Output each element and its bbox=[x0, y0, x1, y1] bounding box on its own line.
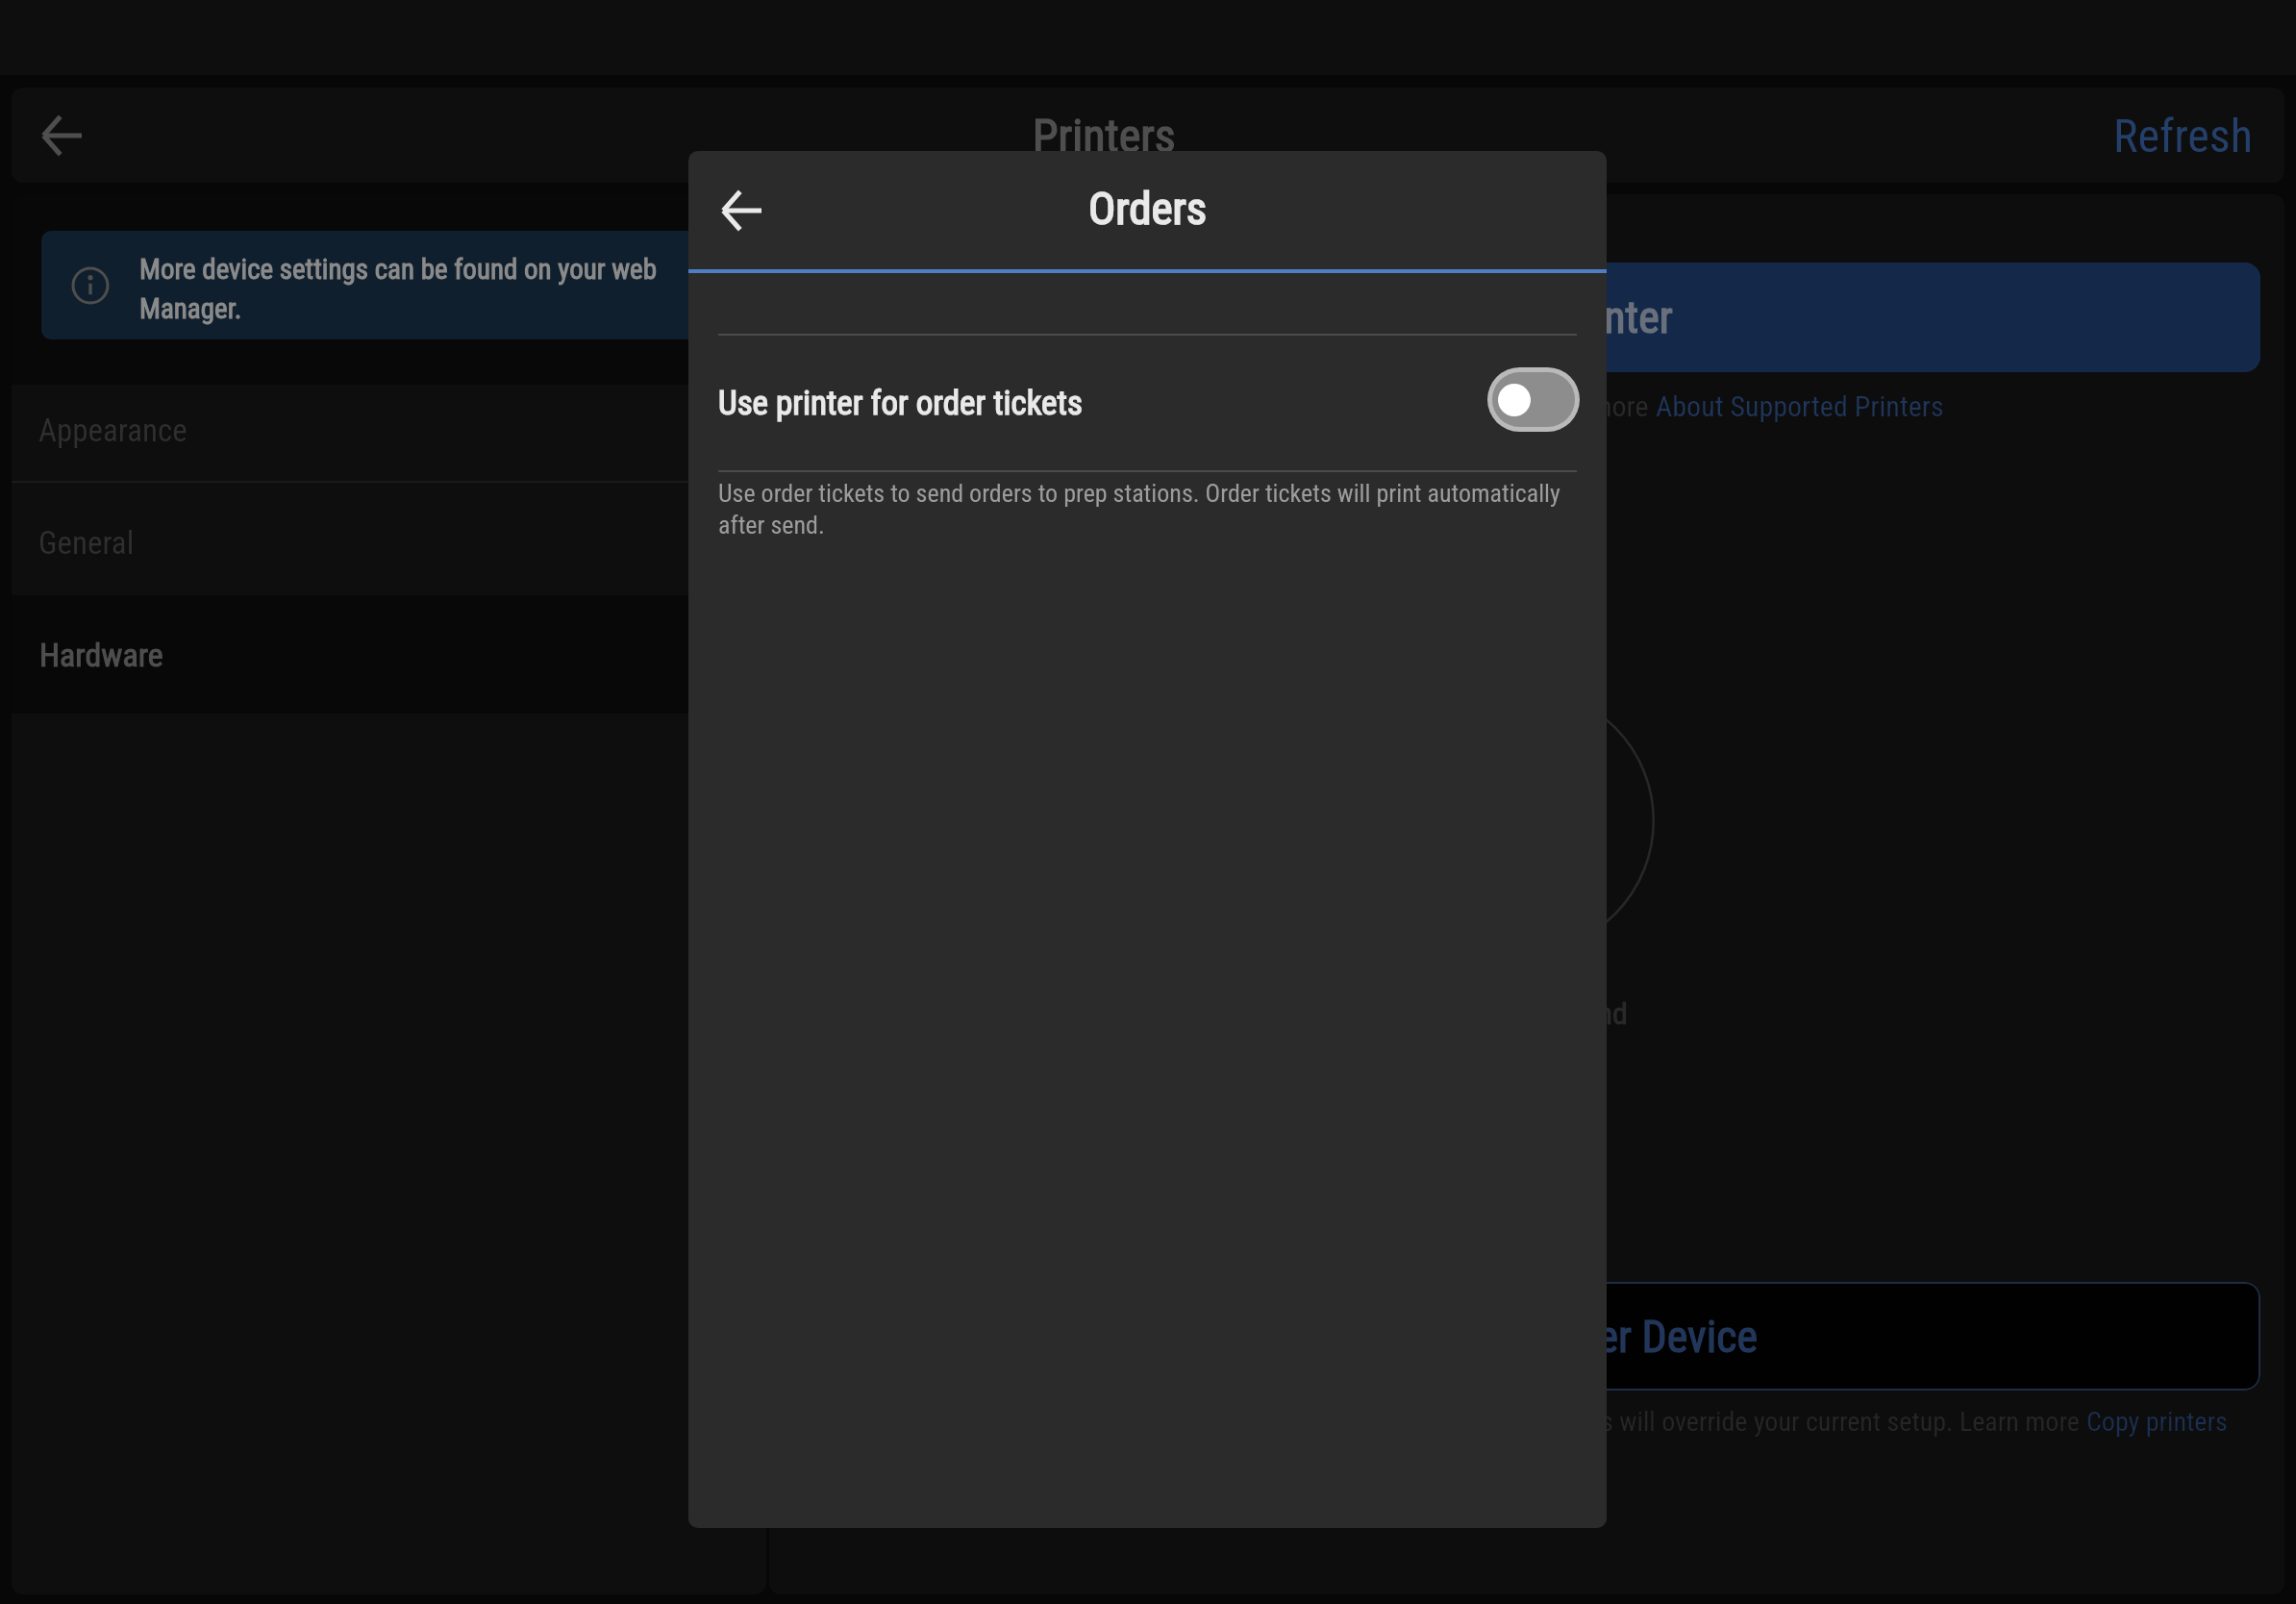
button[interactable]: Refresh bbox=[2082, 91, 2284, 180]
button[interactable]: Add New Printer bbox=[801, 263, 2260, 372]
button[interactable]: Appearance bbox=[12, 385, 766, 481]
button[interactable]: Copy from Another Device bbox=[801, 1282, 2260, 1391]
button[interactable]: Back bbox=[21, 95, 102, 176]
button[interactable]: Hardware bbox=[12, 595, 766, 714]
staticText: Add New Printer bbox=[1389, 291, 1673, 343]
staticText: Copy from Another Device bbox=[1304, 1311, 1759, 1363]
button[interactable]: Back bbox=[700, 169, 783, 252]
staticText: Hardware bbox=[39, 636, 163, 674]
staticText: General bbox=[38, 524, 135, 562]
staticText: More device settings can be found on you… bbox=[139, 253, 657, 286]
staticText: Copy printers from another device that i… bbox=[826, 1406, 2086, 1438]
button[interactable]: General bbox=[12, 483, 766, 595]
staticText: Manager. bbox=[139, 292, 242, 325]
staticText: Use order tickets to send orders to prep… bbox=[718, 479, 1577, 539]
button[interactable]: More device settings can be found on you… bbox=[41, 231, 724, 339]
button[interactable]: Copy printers bbox=[2086, 1406, 2228, 1438]
staticText: Appearance bbox=[38, 412, 187, 449]
staticText: No printers found bbox=[1415, 995, 1628, 1032]
button[interactable]: About Supported Printers bbox=[1656, 389, 1944, 423]
staticText: Refresh bbox=[2113, 109, 2253, 163]
staticText: Use printer for order tickets bbox=[718, 384, 1487, 423]
button[interactable]: Use printer for order tickets bbox=[688, 336, 1607, 470]
staticText: Only certain printers are supported. Lea… bbox=[1111, 389, 1656, 423]
staticText: Printers bbox=[1033, 109, 1176, 163]
button[interactable]: Use printer for order tickets bbox=[1487, 367, 1580, 432]
staticText: Orders bbox=[1088, 182, 1208, 235]
